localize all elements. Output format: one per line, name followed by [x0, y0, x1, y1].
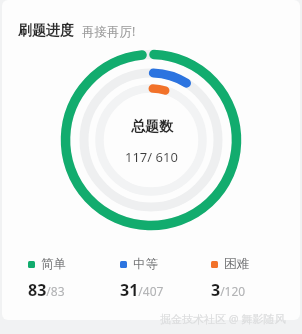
staticText: 简单 — [41, 256, 66, 272]
button[interactable]: 题目进度环形图 — [53, 42, 249, 238]
staticText: 刷题进度 — [18, 22, 74, 40]
staticText: 中等 — [133, 256, 158, 272]
staticText: 117/ 610 — [125, 148, 178, 166]
button[interactable]: 简单 — [14, 256, 106, 301]
button[interactable]: 中等 — [106, 256, 197, 301]
staticText: 3/120 — [211, 279, 246, 301]
button[interactable]: 困难 — [197, 256, 288, 301]
staticText: 再接再厉! — [82, 23, 136, 40]
staticText: 83/83 — [28, 279, 65, 301]
staticText: 掘金技术社区 @ 舞影随风 — [160, 311, 286, 326]
staticText: 31/407 — [120, 279, 164, 301]
staticText: 困难 — [224, 256, 249, 272]
staticText: 总题数 — [131, 118, 173, 136]
